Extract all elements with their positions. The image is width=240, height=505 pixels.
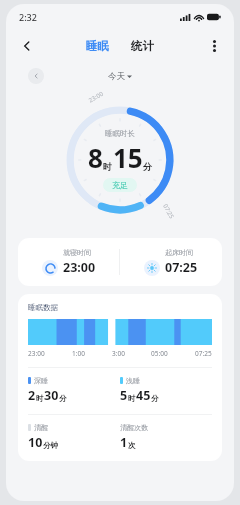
button[interactable]: 就寝时间 xyxy=(18,238,222,286)
staticText: 10 xyxy=(28,434,43,451)
staticText: 就寝时间 xyxy=(63,248,91,257)
staticText: 统计 xyxy=(131,39,154,53)
button[interactable]: 睡眠数据 xyxy=(18,294,222,461)
staticText: 15 xyxy=(113,140,143,175)
staticText: 清醒 xyxy=(34,423,48,432)
button[interactable]: 浅睡 xyxy=(120,376,212,404)
staticText: 23:00 xyxy=(63,259,96,276)
staticText: 分 xyxy=(151,394,159,403)
staticText: 30 xyxy=(44,387,59,404)
staticText: 23:00 xyxy=(28,349,45,358)
staticText: 次 xyxy=(128,441,136,450)
staticText: 07:25 xyxy=(161,203,176,221)
button[interactable]: Previous day xyxy=(28,68,44,84)
staticText: 45 xyxy=(136,387,151,404)
staticText: 时 xyxy=(36,394,44,403)
staticText: 05:00 xyxy=(151,349,168,358)
staticText: 今天 xyxy=(108,71,125,82)
staticText: 1 xyxy=(120,434,128,451)
staticText: 07:25 xyxy=(195,349,212,358)
staticText: 23:00 xyxy=(87,89,105,104)
button[interactable]: 睡眠 xyxy=(82,35,113,57)
staticText: 睡眠 xyxy=(86,39,109,53)
staticText: 3:00 xyxy=(112,349,125,358)
button[interactable]: 清醒次数 xyxy=(120,423,212,451)
staticText: 5 xyxy=(120,387,128,404)
staticText: 充足 xyxy=(112,180,128,190)
staticText: 浅睡 xyxy=(126,376,140,385)
staticText: 8 xyxy=(88,140,103,175)
button[interactable]: 统计 xyxy=(127,35,158,57)
staticText: 分 xyxy=(59,394,67,403)
button[interactable]: More options xyxy=(201,33,227,59)
button[interactable]: 充足 xyxy=(103,178,137,192)
staticText: 起床时间 xyxy=(165,248,193,257)
staticText: 睡眠数据 xyxy=(28,303,58,312)
staticText: 时 xyxy=(128,394,136,403)
staticText: 1:00 xyxy=(72,349,85,358)
staticText: 分钟 xyxy=(43,441,58,450)
button[interactable]: 清醒 xyxy=(28,423,120,451)
button[interactable]: 今天 xyxy=(102,67,138,86)
staticText: 2 xyxy=(28,387,36,404)
staticText: 深睡 xyxy=(34,376,48,385)
staticText: 时 xyxy=(103,161,112,172)
button[interactable]: Back xyxy=(13,32,41,60)
staticText: 清醒次数 xyxy=(120,423,148,432)
staticText: 07:25 xyxy=(165,259,198,276)
staticText: 分 xyxy=(143,161,152,172)
staticText: 2:32 xyxy=(19,11,37,23)
staticText: 睡眠时长 xyxy=(105,129,135,138)
button[interactable]: 深睡 xyxy=(28,376,120,404)
